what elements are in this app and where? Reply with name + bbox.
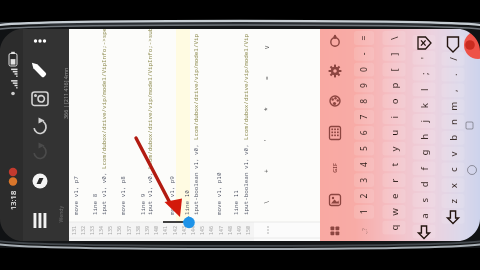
button[interactable] xyxy=(0,0,480,270)
